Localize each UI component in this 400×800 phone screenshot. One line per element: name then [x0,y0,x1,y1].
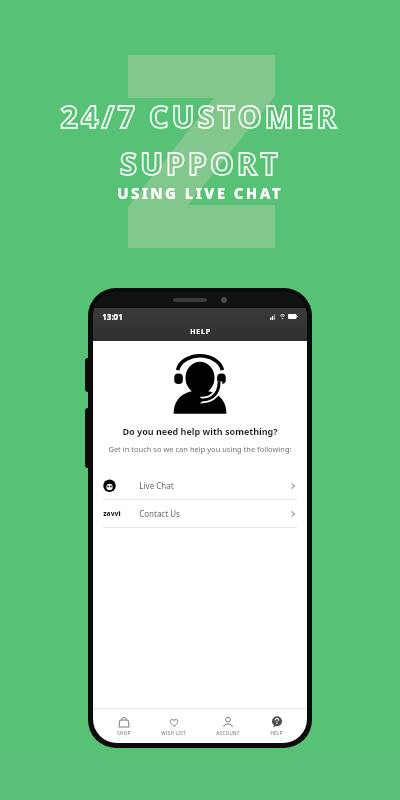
staticText: Do you need help with something? [122,425,278,437]
staticText: SUPPORT [120,143,281,184]
staticText: 13:01 [102,311,123,322]
staticText: HELP [270,730,283,736]
staticText: 24/7 CUSTOMER [60,96,340,137]
button[interactable]: HELP [264,714,289,738]
staticText: WISH LIST [161,730,186,736]
staticText: Live Chat [139,480,174,491]
button[interactable]: zavvi [93,500,307,527]
staticText: Contact Us [139,508,180,519]
staticText: Get in touch so we can help you using th… [108,444,292,454]
staticText: zavvi [103,509,121,518]
button[interactable]: SHOP [111,714,137,738]
button[interactable]: Live Chat [93,472,307,499]
button[interactable]: WISH LIST [155,714,192,738]
staticText: SHOP [117,730,131,736]
staticText: ACCOUNT [216,730,240,736]
staticText: USING LIVE CHAT [117,183,283,203]
staticText: HELP [190,327,211,337]
button[interactable]: ACCOUNT [210,714,246,738]
